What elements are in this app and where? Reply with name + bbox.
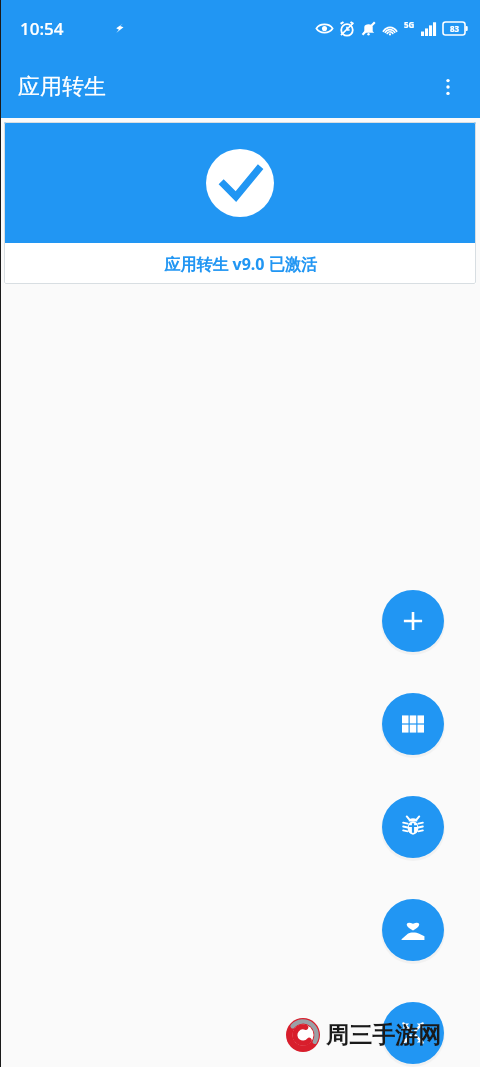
button[interactable]: Apps grid [382, 693, 444, 755]
button[interactable]: Debug [382, 796, 444, 858]
staticText: 应用转生 v9.0 已激活 [164, 253, 317, 275]
button[interactable]: More options [424, 63, 472, 111]
staticText: 应用转生 [18, 73, 106, 101]
button[interactable]: Add [382, 590, 444, 652]
staticText: 10:54 [20, 17, 64, 40]
staticText: 83 [450, 23, 460, 34]
button[interactable]: 应用转生 v9.0 已激活 [4, 122, 476, 284]
staticText: 周三手游网 [326, 1021, 441, 1050]
button[interactable]: Fullscreen [382, 1002, 444, 1064]
staticText: 5G [404, 19, 415, 30]
button[interactable]: Donate [382, 899, 444, 961]
